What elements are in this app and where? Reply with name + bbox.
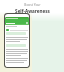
staticText: Boost Your (24, 3, 41, 7)
staticText: Self-Awareness (15, 8, 50, 14)
button[interactable] (5, 17, 29, 25)
